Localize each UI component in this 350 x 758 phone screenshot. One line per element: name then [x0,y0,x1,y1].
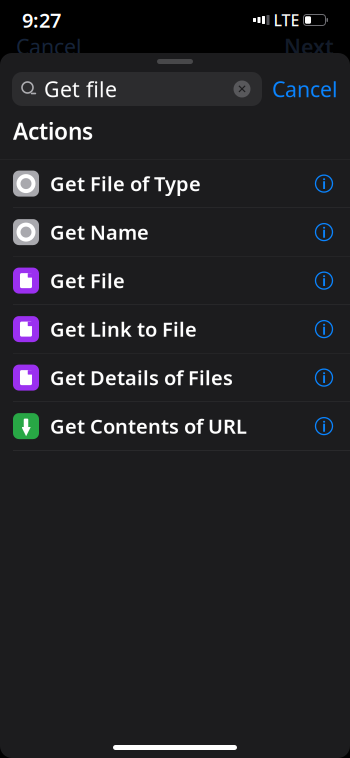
button[interactable]: More info about action [311,268,337,294]
staticText: Get Contents of URL [50,413,247,439]
staticText: Get Link to File [50,316,197,342]
staticText: Actions [13,116,93,146]
staticText: 9:27 [22,7,61,33]
staticText: ✕ [237,82,247,96]
staticText: ▼ [21,424,30,437]
staticText: Get Details of Files [50,364,233,391]
staticText: Next [284,32,334,61]
button[interactable]: Clear search [231,78,253,100]
button[interactable]: More info about action [311,171,337,197]
staticText: i [322,222,326,242]
button[interactable]: More info about action [311,365,337,391]
button[interactable]: Cancel [16,32,82,61]
button[interactable]: Get Details of Files [0,354,350,402]
staticText: Get Name [50,219,149,245]
button[interactable]: More info about action [311,413,337,439]
button[interactable]: ▼ [0,402,350,450]
staticText: Cancel [16,32,82,61]
button[interactable]: Cancel [272,75,338,103]
button[interactable]: Get Link to File [0,305,350,353]
button[interactable]: Get File of Type [0,160,350,208]
staticText: i [322,368,326,387]
staticText: Get File [50,267,125,294]
button[interactable]: Get Name [0,208,350,256]
button[interactable]: More info about action [311,219,337,245]
staticText: i [322,271,326,290]
button[interactable]: Get File [0,257,350,305]
staticText: Get file [44,75,117,103]
staticText: i [322,174,326,193]
staticText: i [322,319,326,339]
staticText: i [322,416,326,436]
staticText: Get File of Type [50,170,201,197]
staticText: LTE [273,9,299,31]
button[interactable]: More info about action [311,316,337,342]
staticText: Cancel [272,75,338,103]
button[interactable]: Next [284,32,334,61]
